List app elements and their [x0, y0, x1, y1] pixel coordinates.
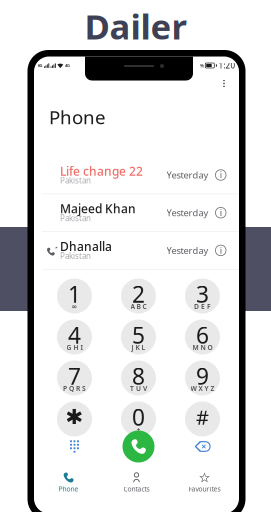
- button[interactable]: 4: [57, 319, 92, 354]
- button[interactable]: 0: [121, 401, 156, 436]
- button[interactable]: More options: [217, 76, 231, 90]
- staticText: Yesterday: [166, 244, 208, 257]
- button[interactable]: 5: [121, 319, 156, 354]
- staticText: 7: [68, 361, 81, 391]
- button[interactable]: Call: [121, 430, 155, 462]
- staticText: 4G: [65, 63, 70, 68]
- staticText: Favourites: [188, 485, 220, 493]
- staticText: 8: [132, 361, 145, 391]
- staticText: %: [200, 62, 204, 69]
- staticText: ∞: [71, 303, 77, 310]
- staticText: 6: [196, 320, 209, 350]
- button[interactable]: Dhanalla: [34, 232, 239, 269]
- staticText: 4G: [37, 63, 42, 68]
- staticText: 1:20: [218, 60, 235, 71]
- button[interactable]: 2: [121, 278, 156, 313]
- button[interactable]: Majeed Khan: [34, 194, 239, 231]
- staticText: J K L: [131, 343, 145, 352]
- staticText: Pakistan: [60, 213, 91, 223]
- staticText: #: [196, 404, 209, 430]
- staticText: Contacts: [123, 485, 149, 493]
- staticText: i: [220, 244, 222, 256]
- button[interactable]: 7: [57, 360, 92, 395]
- staticText: Phone: [58, 485, 78, 493]
- staticText: ✱: [65, 405, 83, 429]
- staticText: 4: [68, 320, 81, 350]
- staticText: Life change 22: [60, 163, 143, 179]
- button[interactable]: 6: [185, 319, 220, 354]
- staticText: P Q R S: [63, 384, 86, 393]
- staticText: Dailer: [84, 3, 186, 49]
- staticText: M N O: [192, 343, 212, 352]
- staticText: Phone: [49, 105, 106, 129]
- staticText: 5: [132, 320, 145, 350]
- button[interactable]: 8: [121, 360, 156, 395]
- staticText: G H I: [66, 343, 82, 352]
- button[interactable]: Phone: [34, 468, 102, 496]
- button[interactable]: #: [185, 401, 220, 436]
- button[interactable]: Dialpad: [57, 430, 91, 462]
- staticText: Pakistan: [60, 175, 91, 186]
- staticText: T U V: [130, 384, 147, 393]
- staticText: +: [136, 425, 140, 434]
- staticText: Majeed Khan: [60, 201, 136, 217]
- staticText: D E F: [194, 302, 211, 311]
- button[interactable]: Contacts: [102, 468, 170, 496]
- staticText: 0: [132, 402, 145, 432]
- staticText: W X Y Z: [190, 384, 214, 393]
- staticText: Pakistan: [60, 251, 91, 261]
- staticText: Dhanalla: [60, 238, 112, 254]
- staticText: 3: [196, 279, 209, 309]
- button[interactable]: Life change 22: [34, 156, 239, 193]
- staticText: i: [220, 168, 222, 181]
- staticText: Yesterday: [166, 169, 208, 181]
- button[interactable]: 1: [57, 278, 92, 313]
- staticText: i: [220, 206, 222, 219]
- button[interactable]: 3: [185, 278, 220, 313]
- button[interactable]: ✱: [57, 401, 92, 436]
- button[interactable]: 9: [185, 360, 220, 395]
- staticText: 9: [196, 361, 209, 391]
- staticText: 1: [68, 279, 81, 309]
- staticText: 2: [132, 279, 145, 309]
- button[interactable]: Favourites: [170, 468, 238, 496]
- button[interactable]: Delete: [185, 430, 219, 462]
- staticText: Yesterday: [166, 206, 208, 219]
- staticText: A B C: [130, 302, 146, 311]
